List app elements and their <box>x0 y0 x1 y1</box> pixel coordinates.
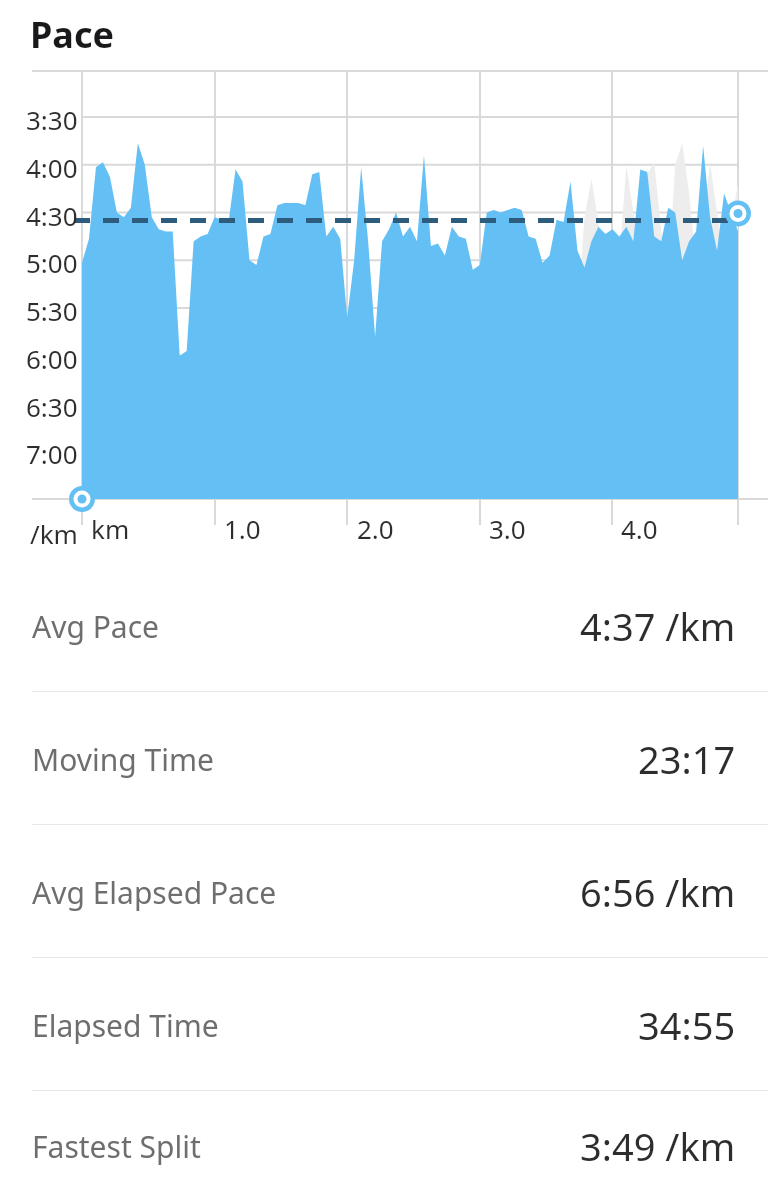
staticText: 4:00 <box>26 150 78 185</box>
staticText: 4:30 <box>26 198 78 233</box>
staticText: Fastest Split <box>32 1126 201 1167</box>
button[interactable]: Avg Elapsed Pace <box>0 825 768 958</box>
staticText: 7:00 <box>26 436 78 471</box>
staticText: Pace <box>30 10 114 59</box>
staticText: 5:30 <box>26 293 78 328</box>
staticText: 2.0 <box>357 511 394 546</box>
staticText: 3.0 <box>489 511 526 546</box>
staticText: 3:30 <box>26 102 78 137</box>
staticText: 1.0 <box>224 511 261 546</box>
staticText: Avg Pace <box>32 606 159 647</box>
staticText: 6:00 <box>26 341 78 376</box>
staticText: 4.0 <box>621 511 658 546</box>
staticText: 4:37 /km <box>580 600 736 652</box>
staticText: /km <box>30 516 78 551</box>
staticText: Elapsed Time <box>32 1005 219 1046</box>
staticText: 6:30 <box>26 389 78 424</box>
button[interactable]: Elapsed Time <box>0 958 768 1091</box>
staticText: 34:55 <box>638 999 736 1051</box>
staticText: 23:17 <box>638 733 736 785</box>
staticText: km <box>91 511 130 546</box>
button[interactable]: Moving Time <box>0 692 768 825</box>
button[interactable]: Fastest Split <box>0 1091 768 1200</box>
staticText: Avg Elapsed Pace <box>32 872 277 913</box>
staticText: 5:00 <box>26 245 78 280</box>
button[interactable]: Avg Pace <box>0 559 768 692</box>
staticText: 6:56 /km <box>580 866 736 918</box>
staticText: Moving Time <box>32 739 214 780</box>
staticText: 3:49 /km <box>580 1120 736 1172</box>
